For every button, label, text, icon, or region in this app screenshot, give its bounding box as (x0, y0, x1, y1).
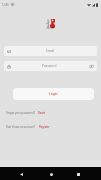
staticText: Email (46, 49, 55, 53)
button[interactable]: Reset (38, 111, 46, 115)
staticText: Reset (38, 111, 46, 115)
staticText: Register (39, 125, 50, 129)
button[interactable]: Login (13, 88, 94, 100)
staticText: 12:45 (2, 3, 9, 7)
button[interactable]: Home (45, 168, 57, 180)
button[interactable]: Recents (72, 168, 84, 180)
staticText: Forgot your password? (6, 111, 35, 115)
staticText: Password (42, 64, 57, 68)
button[interactable]: Register (39, 125, 50, 129)
staticText: Login (49, 92, 58, 96)
button[interactable]: Email (4, 46, 97, 56)
button[interactable]: Password (4, 61, 97, 71)
button[interactable]: Back (15, 168, 27, 180)
staticText: Don't have an account? (6, 125, 36, 129)
